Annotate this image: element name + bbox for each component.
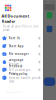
staticText: All Document Reader v1.0 [6, 91, 23, 93]
staticText: Rate Us [9, 36, 20, 40]
button[interactable]: Language [0, 58, 43, 66]
button[interactable]: Privacy policy [0, 74, 43, 82]
button[interactable]: File manager [0, 50, 43, 58]
staticText: File manager [9, 52, 29, 56]
staticText: All Document Reader [2, 13, 30, 24]
staticText: Share App [9, 44, 24, 48]
staticText: How we handle your data [9, 76, 38, 83]
staticText: Read all your files in one place [3, 25, 39, 32]
staticText: Tell us what you think [9, 68, 31, 75]
button[interactable]: Rate Us [0, 34, 43, 42]
staticText: Feedback [9, 64, 22, 68]
button[interactable]: Share App [0, 42, 43, 50]
staticText: Language [9, 58, 24, 62]
button[interactable]: Feedback [0, 66, 43, 74]
staticText: English [9, 62, 19, 66]
staticText: Privacy policy [9, 72, 27, 76]
